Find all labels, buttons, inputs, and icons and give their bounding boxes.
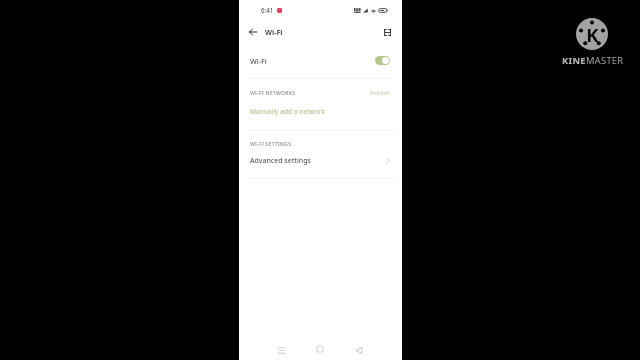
staticText: MASTER [586, 54, 624, 67]
button[interactable]: Recent apps [273, 342, 289, 358]
staticText: Advanced settings [250, 156, 311, 165]
staticText: K [586, 22, 599, 47]
button[interactable]: Scan QR code [379, 24, 395, 40]
button[interactable]: Manually add a network [239, 100, 402, 123]
staticText: WI-FI SETTINGS [250, 141, 292, 148]
staticText: KINE [562, 54, 586, 67]
staticText: Wi-Fi [250, 56, 267, 66]
button[interactable]: Advanced settings [239, 149, 402, 172]
staticText: 6:41 [261, 6, 274, 14]
button[interactable]: Refresh [366, 85, 394, 99]
button[interactable]: Back [245, 24, 261, 40]
staticText: Refresh [370, 89, 390, 96]
staticText: Manually add a network [250, 107, 326, 116]
button[interactable]: Wi-Fi [239, 45, 402, 76]
button[interactable]: Home [312, 341, 328, 357]
staticText: WI-FI NETWORKS [250, 90, 296, 97]
button[interactable]: Back [351, 342, 367, 358]
staticText: Wi-Fi [265, 27, 283, 37]
